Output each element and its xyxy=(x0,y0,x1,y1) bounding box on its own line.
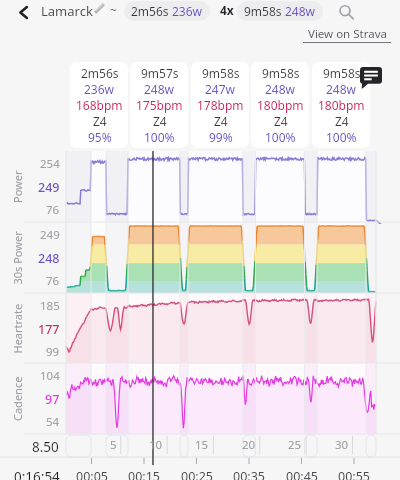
button[interactable]: Back xyxy=(11,0,35,24)
staticText: Z4 xyxy=(214,113,228,129)
staticText: 00:05 xyxy=(76,468,108,480)
staticText: 236w xyxy=(84,81,115,97)
staticText: 254 xyxy=(40,156,60,172)
staticText: 5 xyxy=(110,437,117,453)
staticText: 8.50 xyxy=(32,438,59,456)
staticText: 100% xyxy=(144,129,175,145)
staticText: Z4 xyxy=(93,113,107,129)
staticText: 247w xyxy=(205,81,236,97)
staticText: View on Strava xyxy=(308,26,387,42)
staticText: 248w xyxy=(285,3,316,19)
staticText: 2m56s xyxy=(81,65,119,81)
staticText: 100% xyxy=(326,129,357,145)
staticText: ~ xyxy=(110,2,117,18)
staticText: 00:45 xyxy=(286,468,318,480)
button[interactable]: 9m58s xyxy=(312,62,370,148)
staticText: 9m58s xyxy=(323,65,361,81)
button[interactable]: Search xyxy=(334,0,358,24)
staticText: 9m58s xyxy=(202,65,240,81)
staticText: Lamarck xyxy=(41,2,93,20)
staticText: 248w xyxy=(144,81,175,97)
staticText: 100% xyxy=(265,129,296,145)
staticText: Power xyxy=(10,170,25,203)
staticText: 180bpm xyxy=(318,97,365,113)
button[interactable]: Comments xyxy=(360,67,382,89)
staticText: 99% xyxy=(209,129,233,145)
button[interactable]: View on Strava xyxy=(303,26,391,43)
staticText: Cadence xyxy=(10,376,25,421)
button[interactable]: 9m57s xyxy=(130,62,188,148)
staticText: 185 xyxy=(40,298,60,314)
button[interactable]: 9m58s xyxy=(237,1,323,21)
staticText: 104 xyxy=(40,368,60,384)
staticText: 99 xyxy=(46,344,60,360)
staticText: 54 xyxy=(46,414,60,430)
staticText: Z4 xyxy=(274,113,288,129)
staticText: 00:15 xyxy=(128,468,160,480)
staticText: 30 xyxy=(335,437,349,453)
staticText: 00:35 xyxy=(233,468,265,480)
staticText: 15 xyxy=(195,437,209,453)
staticText: 2m56s xyxy=(131,3,169,19)
staticText: 9m58s xyxy=(262,65,300,81)
staticText: 249 xyxy=(38,179,60,196)
staticText: 9m58s xyxy=(244,3,282,19)
staticText: 248w xyxy=(265,81,296,97)
button[interactable]: 2m56s xyxy=(124,1,210,21)
staticText: 175bpm xyxy=(136,97,183,113)
staticText: 25 xyxy=(288,437,302,453)
staticText: 00:25 xyxy=(181,468,213,480)
staticText: 95% xyxy=(88,129,112,145)
staticText: 249 xyxy=(40,227,60,243)
staticText: 180bpm xyxy=(257,97,304,113)
staticText: 00:55 xyxy=(338,468,370,480)
staticText: 177 xyxy=(38,321,60,338)
staticText: 236w xyxy=(172,3,203,19)
staticText: 4x xyxy=(220,2,234,18)
staticText: 178bpm xyxy=(197,97,244,113)
staticText: 10 xyxy=(149,437,163,453)
staticText: 30s Power xyxy=(9,230,24,284)
button[interactable]: 2m56s xyxy=(70,62,128,148)
staticText: 76 xyxy=(46,273,60,289)
button[interactable]: 9m58s xyxy=(251,62,309,148)
button[interactable]: 9m58s xyxy=(191,62,249,148)
staticText: Z4 xyxy=(153,113,167,129)
staticText: 248w xyxy=(326,81,357,97)
staticText: 248 xyxy=(38,250,60,267)
staticText: 76 xyxy=(46,202,60,218)
staticText: 20 xyxy=(242,437,256,453)
staticText: 9m57s xyxy=(141,65,179,81)
staticText: 0:16:54 xyxy=(14,468,60,480)
staticText: 97 xyxy=(45,391,60,408)
staticText: Heartrate xyxy=(9,303,24,353)
staticText: 168bpm xyxy=(76,97,123,113)
staticText: Z4 xyxy=(335,113,349,129)
